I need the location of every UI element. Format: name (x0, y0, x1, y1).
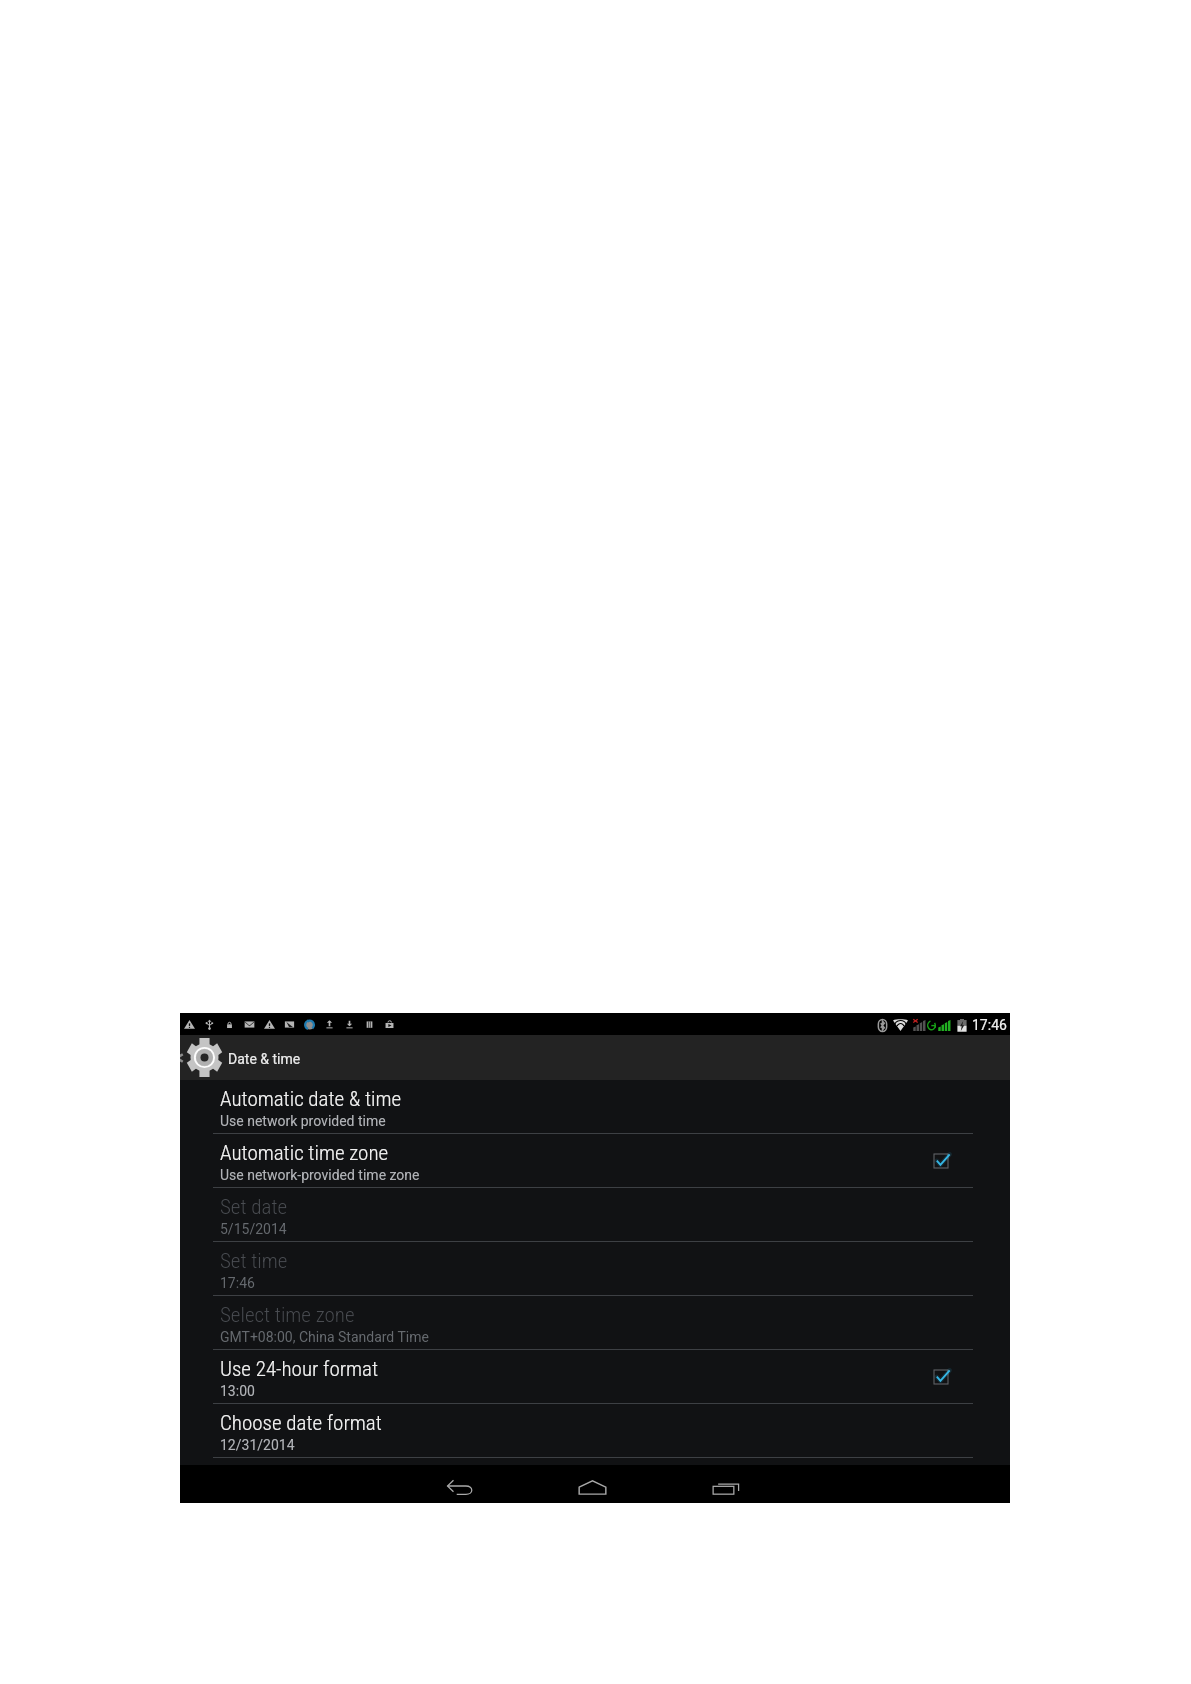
staticText: Automatic time zone (220, 1141, 389, 1166)
staticText: 5/15/2014 (220, 1221, 287, 1237)
staticText: Use network provided time (220, 1113, 386, 1129)
button[interactable]: Choose date format (180, 1404, 1010, 1458)
button[interactable]: Select time zone (180, 1296, 1010, 1350)
staticText: Date & time (228, 1051, 301, 1067)
staticText: Automatic date & time (220, 1087, 402, 1112)
staticText: 17:46 (220, 1275, 255, 1291)
button[interactable]: Recents (686, 1465, 766, 1503)
button[interactable]: Use 24-hour format (180, 1350, 1010, 1404)
staticText: Use 24-hour format (220, 1357, 379, 1382)
staticText: Set date (220, 1195, 288, 1220)
staticText: Set time (220, 1249, 288, 1274)
staticText: 17:46 (972, 1017, 1007, 1033)
staticText: Select time zone (220, 1303, 355, 1328)
staticText: Use network-provided time zone (220, 1167, 420, 1183)
staticText: 13:00 (220, 1383, 255, 1399)
staticText: Choose date format (220, 1411, 382, 1436)
button[interactable]: Home (552, 1465, 632, 1503)
button[interactable]: Back (420, 1465, 500, 1503)
button[interactable]: Set time (180, 1242, 1010, 1296)
staticText: GMT+08:00, China Standard Time (220, 1329, 429, 1345)
button[interactable]: Automatic time zone (180, 1134, 1010, 1188)
staticText: 12/31/2014 (220, 1437, 295, 1453)
button[interactable]: Set date (180, 1188, 1010, 1242)
button[interactable]: Navigate up, Date & time (180, 1035, 400, 1080)
button[interactable]: Automatic date & time (180, 1080, 1010, 1134)
